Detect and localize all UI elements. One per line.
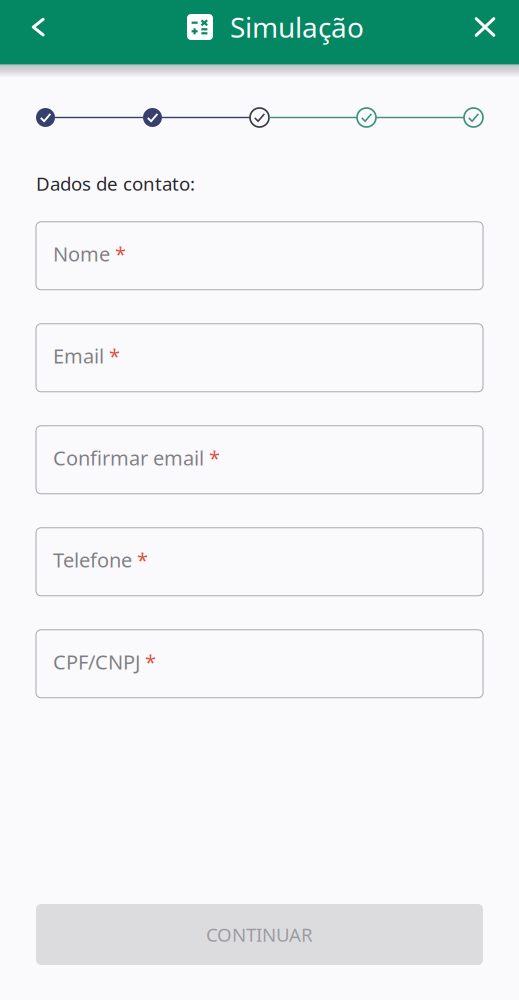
staticText: * [104,342,120,369]
staticText: * [204,444,220,471]
button[interactable]: Back [18,5,58,49]
staticText: Email [53,342,104,369]
staticText: CPF/CNPJ [53,648,140,675]
staticText: Dados de contato: [36,171,195,196]
button[interactable]: CPF/CNPJ [36,630,483,698]
button[interactable]: Telefone [36,528,483,596]
staticText: Confirmar email [53,444,204,471]
button[interactable]: Close [465,5,505,49]
button[interactable]: Confirmar email [36,426,483,494]
staticText: Telefone [53,546,132,573]
staticText: Nome [53,240,110,267]
button[interactable]: CONTINUAR [36,904,483,965]
staticText: * [132,546,148,573]
button[interactable]: Nome [36,222,483,290]
button[interactable]: Email [36,324,483,392]
staticText: CONTINUAR [206,922,313,947]
staticText: * [110,240,126,267]
staticText: * [140,648,156,675]
staticText: Simulação [230,8,364,46]
